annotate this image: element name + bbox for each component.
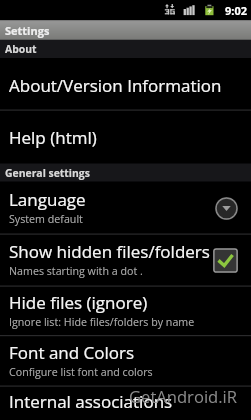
button[interactable]: About/Version Information (0, 58, 251, 110)
button[interactable]: Help (html) (0, 111, 251, 164)
staticText: General settings (5, 166, 90, 180)
staticText: Names starting with a dot . (9, 264, 143, 279)
staticText: Internal associations (9, 390, 173, 413)
staticText: Ignore list: Hide files/folders by name (9, 315, 195, 330)
staticText: Hide files (ignore) (9, 291, 148, 314)
button[interactable]: Font and Colors (0, 336, 251, 386)
staticText: Show hidden files/folders (9, 240, 210, 263)
staticText: Configure list font and colors (9, 365, 153, 380)
button[interactable]: Show hidden files/folders (0, 235, 251, 286)
staticText: 9:02 (225, 3, 248, 18)
staticText: Help (html) (9, 126, 97, 149)
button[interactable]: Internal associations (0, 387, 251, 420)
staticText: Font and Colors (9, 341, 135, 364)
staticText: About (5, 42, 37, 56)
button[interactable]: Settings (0, 20, 251, 40)
button[interactable]: Show hidden files toggle (213, 248, 238, 273)
staticText: GetAndroid.iR (129, 385, 238, 408)
staticText: Settings (5, 23, 50, 38)
staticText: Language (9, 188, 86, 211)
button[interactable]: Language (0, 182, 251, 235)
staticText: About/Version Information (9, 74, 222, 97)
staticText: System default (9, 212, 83, 227)
button[interactable]: Select language (215, 197, 238, 220)
button[interactable]: Hide files (ignore) (0, 287, 251, 336)
